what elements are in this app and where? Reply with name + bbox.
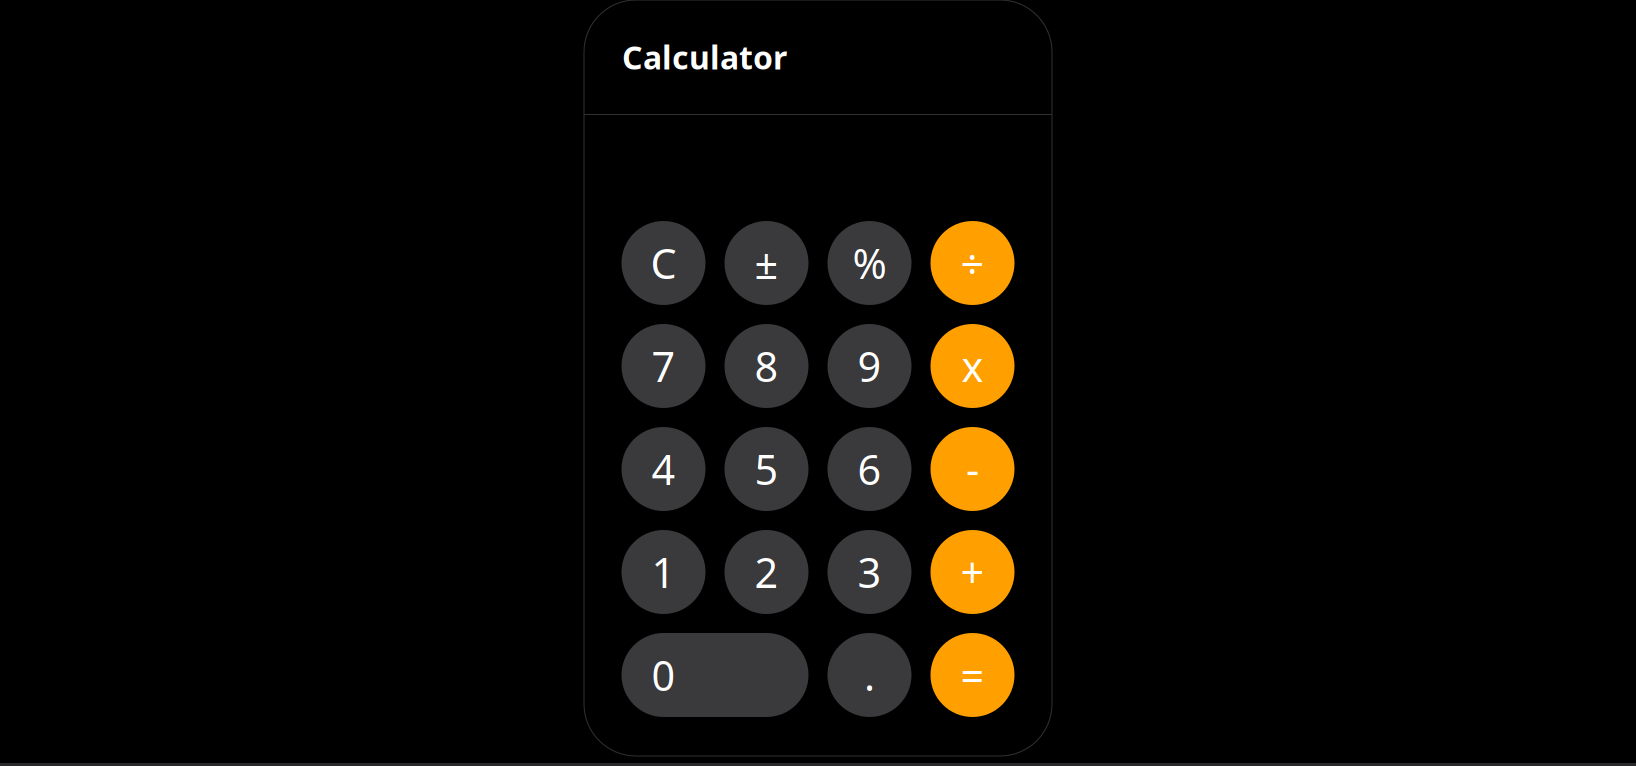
button[interactable]: 4 bbox=[621, 427, 705, 511]
staticText: % bbox=[852, 236, 886, 290]
staticText: 4 bbox=[651, 442, 675, 496]
button[interactable]: 3 bbox=[827, 530, 911, 614]
staticText: ÷ bbox=[960, 236, 984, 290]
button[interactable]: Clear bbox=[621, 221, 705, 305]
button[interactable]: Decimal point bbox=[827, 633, 911, 717]
staticText: Calculator bbox=[622, 36, 787, 78]
staticText: ± bbox=[754, 236, 778, 290]
staticText: 1 bbox=[651, 545, 675, 599]
button[interactable]: 0 bbox=[621, 633, 808, 717]
staticText: 0 bbox=[651, 648, 675, 702]
button[interactable]: Plus bbox=[930, 530, 1014, 614]
button[interactable]: Percent bbox=[827, 221, 911, 305]
staticText: + bbox=[960, 545, 984, 599]
button[interactable]: Equals bbox=[930, 633, 1014, 717]
staticText: x bbox=[961, 339, 983, 393]
button[interactable]: 6 bbox=[827, 427, 911, 511]
staticText: 8 bbox=[754, 339, 778, 393]
staticText: 2 bbox=[754, 545, 778, 599]
staticText: 3 bbox=[857, 545, 881, 599]
staticText: = bbox=[960, 648, 984, 702]
button[interactable]: Multiply bbox=[930, 324, 1014, 408]
button[interactable]: 1 bbox=[621, 530, 705, 614]
button[interactable]: Minus bbox=[930, 427, 1014, 511]
button[interactable]: 5 bbox=[724, 427, 808, 511]
button[interactable]: Plus minus bbox=[724, 221, 808, 305]
button[interactable]: 2 bbox=[724, 530, 808, 614]
staticText: - bbox=[966, 442, 979, 496]
button[interactable]: 9 bbox=[827, 324, 911, 408]
button[interactable]: Divide bbox=[930, 221, 1014, 305]
button[interactable]: 7 bbox=[621, 324, 705, 408]
staticText: . bbox=[864, 648, 875, 702]
button[interactable]: 8 bbox=[724, 324, 808, 408]
staticText: 7 bbox=[651, 339, 675, 393]
staticText: 9 bbox=[857, 339, 881, 393]
staticText: 6 bbox=[857, 442, 881, 496]
staticText: C bbox=[650, 236, 676, 290]
staticText: 5 bbox=[754, 442, 778, 496]
